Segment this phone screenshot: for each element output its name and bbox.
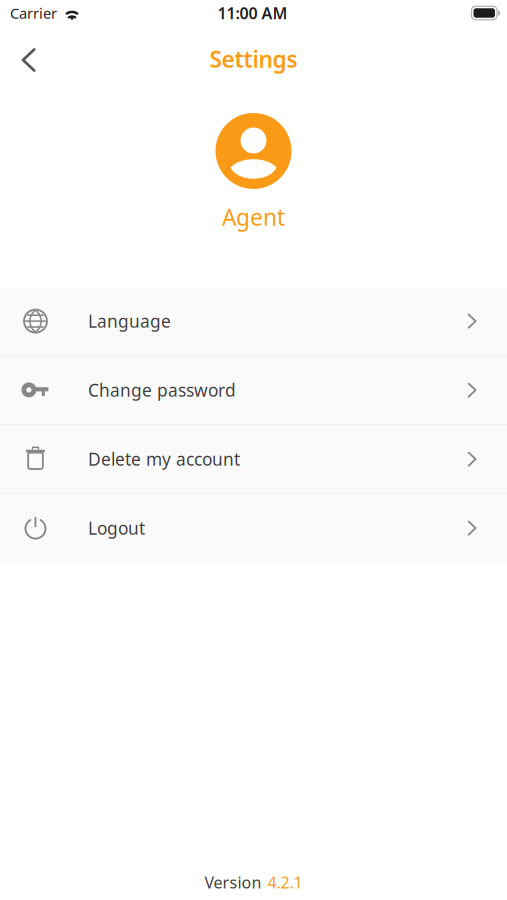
staticText: 11:00 AM — [217, 2, 287, 24]
button[interactable]: Delete my account — [0, 425, 507, 493]
button[interactable]: Change password — [0, 356, 507, 424]
staticText: Carrier — [10, 3, 57, 23]
button[interactable]: Back — [0, 31, 49, 81]
staticText: Logout — [88, 517, 145, 540]
button[interactable]: Language — [0, 287, 507, 355]
staticText: Language — [88, 310, 171, 333]
staticText: 4.2.1 — [267, 872, 302, 893]
staticText: Version — [204, 872, 261, 893]
staticText: Change password — [88, 379, 236, 402]
staticText: Delete my account — [88, 448, 240, 471]
button[interactable]: Logout — [0, 494, 507, 562]
staticText: Settings — [209, 44, 297, 74]
staticText: Agent — [222, 202, 285, 232]
